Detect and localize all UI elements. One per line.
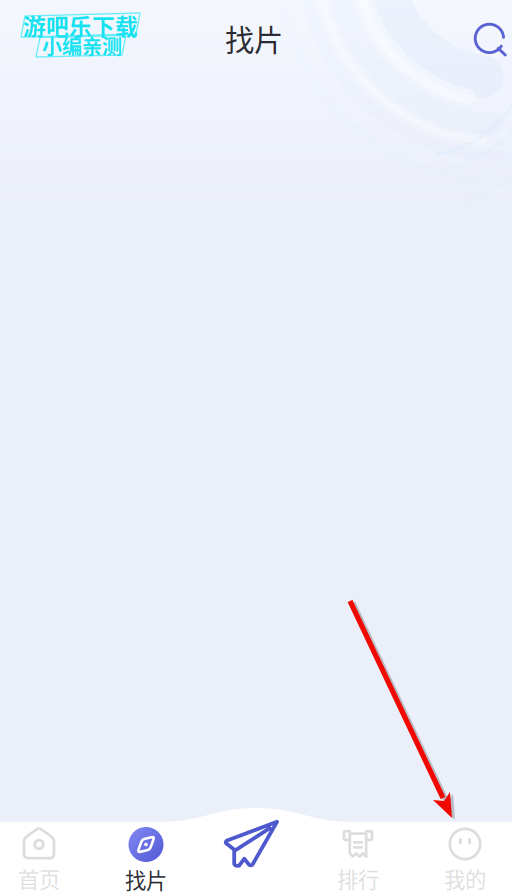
button[interactable]: 我的 (419, 827, 511, 891)
staticText: 我的 (444, 863, 486, 893)
button[interactable]: Search (465, 14, 512, 66)
button[interactable]: 排行 (312, 827, 404, 891)
staticText: 小编亲测 (42, 31, 122, 60)
button[interactable]: 首页 (0, 827, 85, 891)
staticText: 首页 (18, 863, 60, 893)
staticText: 找片 (125, 864, 167, 893)
staticText: 排行 (337, 863, 379, 893)
button[interactable]: Post (205, 813, 297, 877)
button[interactable]: 找片 (100, 827, 192, 891)
staticText: 游吧乐下载 (23, 9, 138, 42)
staticText: 找片 (225, 17, 283, 59)
